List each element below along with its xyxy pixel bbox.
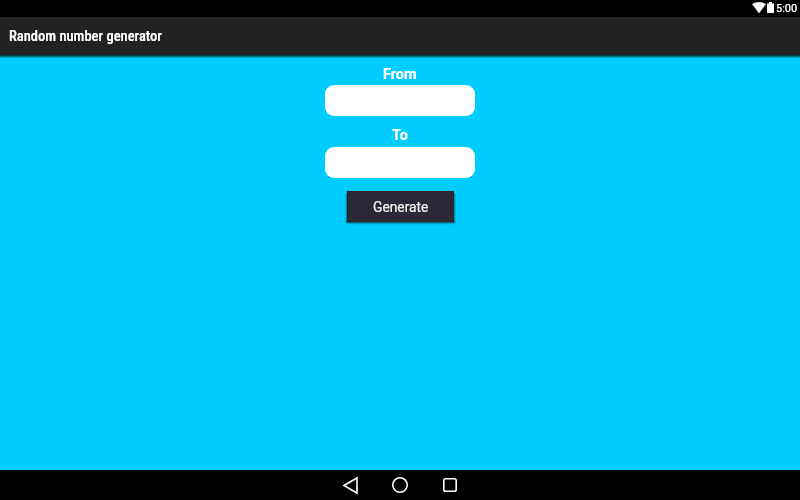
- button[interactable]: Generate: [348, 192, 453, 221]
- staticText: Random number generator: [9, 28, 162, 45]
- button[interactable]: [325, 147, 475, 178]
- button[interactable]: Home: [376, 470, 424, 500]
- staticText: From: [383, 66, 417, 83]
- staticText: To: [392, 127, 408, 144]
- staticText: Generate: [373, 199, 429, 215]
- button[interactable]: Back: [326, 470, 374, 500]
- other: Wi-Fi: [752, 1, 766, 13]
- staticText: 5:00: [776, 2, 798, 15]
- button[interactable]: Recent apps: [426, 470, 474, 500]
- button[interactable]: [325, 85, 475, 116]
- other: Battery: [767, 2, 774, 13]
